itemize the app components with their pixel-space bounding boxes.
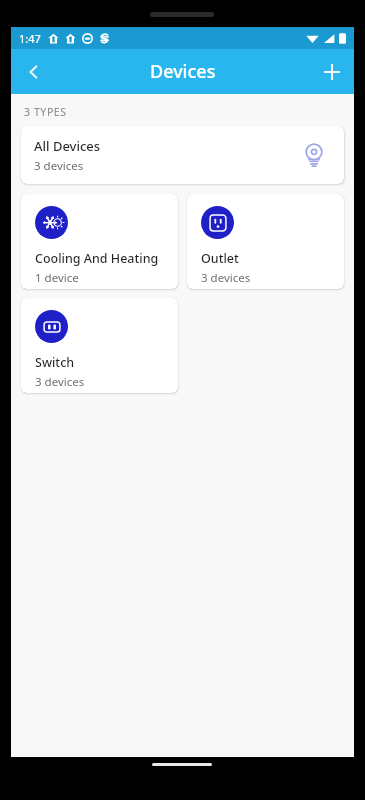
staticText: Outlet [201, 250, 239, 267]
staticText: Devices [150, 59, 216, 84]
staticText: 1 device [35, 270, 79, 286]
staticText: 3 devices [34, 158, 84, 174]
button[interactable]: Outlet [187, 194, 344, 289]
staticText: Switch [35, 354, 75, 371]
button[interactable]: Add device [309, 49, 354, 94]
button[interactable]: Cooling And Heating [21, 194, 178, 289]
staticText: 3 TYPES [24, 105, 67, 119]
button[interactable]: Switch [21, 298, 178, 393]
staticText: Cooling And Heating [35, 250, 159, 267]
staticText: 1:47 [19, 31, 41, 46]
staticText: 3 devices [201, 270, 251, 286]
staticText: All Devices [34, 137, 101, 155]
button[interactable]: All Devices [21, 126, 344, 184]
button[interactable]: Back [11, 49, 56, 94]
staticText: 3 devices [35, 374, 85, 390]
